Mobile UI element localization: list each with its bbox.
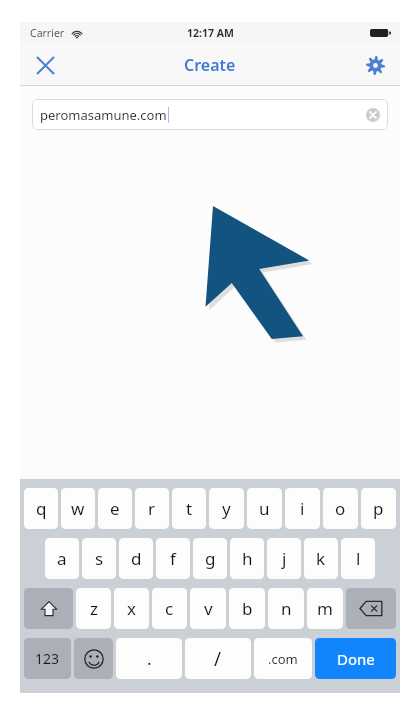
staticText: q [36, 497, 47, 520]
button[interactable]: . [116, 638, 182, 679]
button[interactable]: / [185, 638, 251, 679]
button[interactable]: f [156, 538, 190, 579]
button[interactable]: n [268, 588, 304, 629]
staticText: Done [337, 649, 375, 669]
staticText: m [317, 597, 333, 620]
button[interactable]: z [76, 588, 111, 629]
staticText: f [170, 547, 176, 570]
button[interactable]: h [230, 538, 264, 579]
staticText: y [222, 497, 231, 520]
staticText: w [71, 497, 85, 520]
staticText: z [90, 597, 98, 620]
staticText: a [57, 547, 67, 570]
staticText: t [186, 497, 193, 520]
button[interactable]: Shift [24, 588, 73, 629]
button[interactable]: s [82, 538, 116, 579]
staticText: l [356, 547, 361, 570]
button[interactable]: j [267, 538, 301, 579]
staticText: b [242, 597, 253, 620]
staticText: r [148, 497, 156, 520]
button[interactable]: u [247, 488, 282, 529]
button[interactable]: y [209, 488, 244, 529]
staticText: e [110, 497, 120, 520]
button[interactable]: o [323, 488, 358, 529]
button[interactable]: a [45, 538, 79, 579]
staticText: h [242, 547, 253, 570]
staticText: c [165, 597, 174, 620]
staticText: d [131, 547, 142, 570]
button[interactable]: w [61, 488, 95, 529]
button[interactable]: v [190, 588, 226, 629]
button[interactable]: k [304, 538, 338, 579]
staticText: Carrier [30, 26, 65, 40]
button[interactable]: d [119, 538, 153, 579]
button[interactable]: i [285, 488, 320, 529]
staticText: .com [268, 650, 298, 668]
button[interactable]: peromasamune.com [32, 99, 388, 130]
button[interactable]: q [24, 488, 58, 529]
staticText: x [127, 597, 136, 620]
button[interactable]: Settings [350, 44, 400, 86]
button[interactable]: c [152, 588, 187, 629]
staticText: j [282, 547, 287, 570]
staticText: 12:17 AM [187, 26, 234, 40]
button[interactable]: p [361, 488, 396, 529]
button[interactable]: Emoji keyboard [74, 638, 113, 679]
staticText: i [300, 497, 305, 520]
button[interactable]: r [135, 488, 169, 529]
staticText: o [335, 497, 346, 520]
button[interactable]: Done [315, 638, 396, 679]
staticText: Create [184, 54, 236, 76]
staticText: n [281, 597, 292, 620]
staticText: g [205, 547, 216, 570]
staticText: p [373, 497, 384, 520]
button[interactable]: t [172, 488, 206, 529]
button[interactable]: 123 [24, 638, 71, 679]
staticText: 123 [35, 649, 60, 668]
staticText: . [147, 647, 152, 670]
staticText: s [95, 547, 104, 570]
staticText: k [316, 547, 326, 570]
staticText: v [204, 597, 213, 620]
button[interactable]: Close [20, 44, 70, 86]
button[interactable]: Backspace [346, 588, 396, 629]
button[interactable]: .com [254, 638, 312, 679]
staticText: / [214, 646, 222, 672]
button[interactable]: m [307, 588, 343, 629]
button[interactable]: x [114, 588, 149, 629]
staticText: peromasamune.com [40, 106, 167, 124]
button[interactable]: e [98, 488, 132, 529]
button[interactable]: Clear text [363, 105, 383, 125]
button[interactable]: l [341, 538, 375, 579]
button[interactable]: g [193, 538, 227, 579]
staticText: u [259, 497, 270, 520]
button[interactable]: b [229, 588, 265, 629]
